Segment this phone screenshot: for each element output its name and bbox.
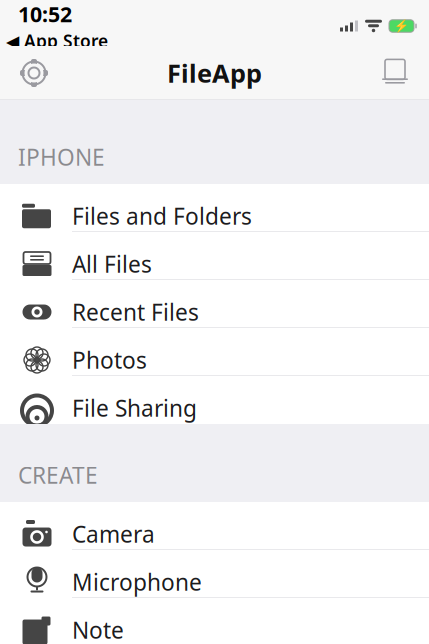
staticText: File Sharing: [72, 393, 197, 423]
staticText: ⚡: [394, 19, 409, 33]
button[interactable]: Layers: [369, 47, 421, 99]
staticText: IPHONE: [18, 142, 105, 172]
button[interactable]: Photos: [0, 328, 429, 376]
button[interactable]: ◀ App Store: [0, 29, 108, 52]
button[interactable]: File Sharing: [0, 376, 429, 424]
staticText: CREATE: [18, 460, 98, 490]
button[interactable]: All Files: [0, 232, 429, 280]
staticText: Camera: [72, 519, 155, 549]
staticText: FileApp: [167, 56, 262, 90]
button[interactable]: Camera: [0, 502, 429, 550]
button[interactable]: Files and Folders: [0, 184, 429, 232]
staticText: Microphone: [72, 567, 202, 597]
staticText: 10:52: [18, 0, 72, 28]
staticText: All Files: [72, 249, 152, 279]
button[interactable]: Note: [0, 598, 429, 644]
button[interactable]: Settings: [8, 47, 60, 99]
button[interactable]: Microphone: [0, 550, 429, 598]
staticText: Photos: [72, 345, 147, 375]
staticText: Note: [72, 615, 124, 644]
staticText: Files and Folders: [72, 201, 252, 231]
staticText: Recent Files: [72, 297, 199, 327]
button[interactable]: Recent Files: [0, 280, 429, 328]
staticText: ◀ App Store: [6, 29, 108, 52]
